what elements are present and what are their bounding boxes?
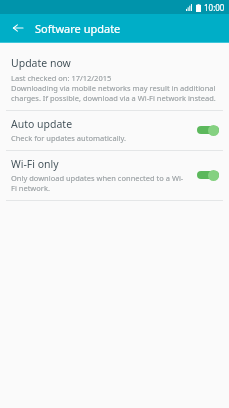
staticText: Downloading via mobile networks may resu… — [11, 83, 219, 103]
staticText: Software update — [35, 21, 121, 36]
button[interactable]: Toggle — [195, 122, 221, 138]
staticText: Wi-Fi only — [11, 157, 59, 171]
button[interactable]: Toggle — [195, 167, 221, 183]
button[interactable]: Wi-Fi only — [0, 151, 229, 200]
button[interactable]: Auto update — [0, 111, 229, 150]
staticText: 10:00 — [204, 2, 225, 13]
staticText: Check for updates automatically. — [11, 133, 127, 143]
staticText: Only download updates when connected to … — [11, 173, 189, 193]
staticText: Last checked on: 17/12/2015 — [11, 73, 112, 83]
staticText: Update now — [11, 56, 71, 70]
staticText: Auto update — [11, 117, 73, 131]
button[interactable]: Update now — [0, 51, 229, 110]
button[interactable]: Back — [8, 18, 28, 38]
